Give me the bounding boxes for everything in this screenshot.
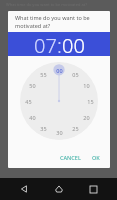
staticText: 05 (72, 71, 79, 78)
staticText: 40 (29, 114, 36, 121)
button[interactable]: OK (89, 152, 103, 163)
staticText: 10 (83, 82, 90, 89)
staticText: 15 (87, 98, 94, 105)
staticText: 35 (40, 125, 47, 132)
staticText: 30 (56, 129, 63, 136)
staticText: 25 (72, 125, 79, 132)
staticText: 20 (83, 114, 90, 121)
staticText: 50 (29, 82, 36, 89)
staticText: OK (92, 154, 100, 161)
staticText: 07 (34, 32, 57, 56)
button[interactable]: Recents (82, 178, 104, 200)
staticText: 00 (56, 67, 63, 74)
staticText: What time do you want to be motivated at… (15, 14, 104, 30)
button[interactable]: Minute picker (20, 62, 98, 140)
staticText: : (57, 32, 62, 56)
staticText: What time do you want to be motivated at… (6, 2, 87, 7)
staticText: 55 (40, 71, 47, 78)
button[interactable]: 07 (34, 32, 57, 56)
staticText: 45 (25, 98, 32, 105)
staticText: 00 (62, 32, 85, 56)
staticText: CANCEL (60, 154, 81, 161)
button[interactable]: CANCEL (57, 152, 84, 163)
button[interactable]: 00 (62, 32, 85, 56)
button[interactable]: Back (13, 178, 35, 200)
button[interactable]: Home (48, 178, 70, 200)
